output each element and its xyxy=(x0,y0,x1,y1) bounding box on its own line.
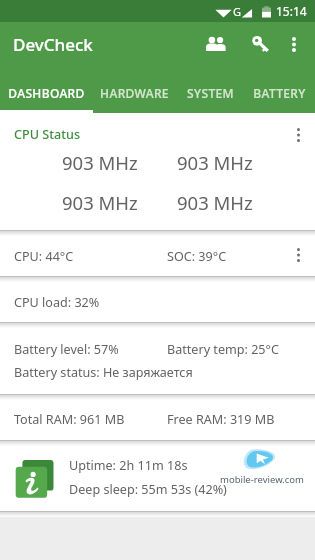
button[interactable]: More options xyxy=(276,26,312,62)
button[interactable]: CPU options xyxy=(282,119,314,151)
button[interactable]: HARDWARE xyxy=(93,66,176,113)
staticText: Uptime: 2h 11m 18s xyxy=(69,457,188,474)
staticText: DASHBOARD xyxy=(8,85,85,101)
button[interactable]: BATTERY xyxy=(244,66,315,113)
staticText: CPU Status xyxy=(14,126,81,143)
staticText: 903 MHz xyxy=(62,190,138,215)
staticText: 15:14 xyxy=(276,3,307,19)
staticText: 903 MHz xyxy=(177,190,253,215)
staticText: Battery level: 57% xyxy=(14,341,119,358)
button[interactable]: SYSTEM xyxy=(176,66,244,113)
staticText: 903 MHz xyxy=(177,150,253,175)
staticText: Deep sleep: 55m 53s (42%) xyxy=(69,481,227,498)
staticText: HARDWARE xyxy=(100,85,169,101)
staticText: BATTERY xyxy=(253,85,306,101)
staticText: CPU: 44°C xyxy=(14,248,74,265)
button[interactable]: Accounts xyxy=(196,24,236,64)
button[interactable]: Temperature options xyxy=(282,239,314,271)
button[interactable]: DASHBOARD xyxy=(0,66,93,113)
staticText: DevCheck xyxy=(13,33,93,56)
staticText: Battery status: Не заряжается xyxy=(14,364,193,381)
staticText: G xyxy=(233,4,242,19)
staticText: 903 MHz xyxy=(62,150,138,175)
staticText: mobile-review.com xyxy=(220,473,304,486)
staticText: Battery temp: 25°C xyxy=(167,341,279,358)
staticText: CPU load: 32% xyxy=(14,294,100,311)
button[interactable]: Unlock pro xyxy=(239,24,279,64)
staticText: Free RAM: 319 MB xyxy=(167,411,275,428)
staticText: SYSTEM xyxy=(187,85,234,101)
staticText: SOC: 39°C xyxy=(167,248,227,265)
staticText: Total RAM: 961 MB xyxy=(14,411,125,428)
